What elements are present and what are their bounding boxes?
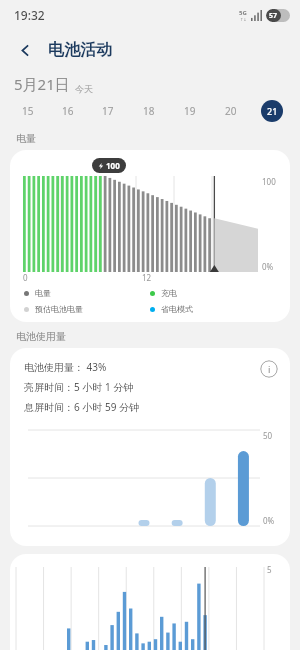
staticText: 充电 <box>161 288 177 298</box>
staticText: 18 <box>143 104 155 118</box>
staticText: 电池活动 <box>48 40 112 60</box>
button[interactable]: 20 <box>210 94 251 128</box>
staticText: 0% <box>263 515 275 526</box>
staticText: 5月21日 <box>14 74 70 94</box>
staticText: 19:32 <box>14 7 45 23</box>
button[interactable]: 21 <box>251 94 292 128</box>
staticText: 100 <box>106 160 120 171</box>
staticText: 0 <box>23 272 28 283</box>
button[interactable]: 100 <box>10 150 290 322</box>
staticText: 5G <box>239 9 247 17</box>
staticText: 5 <box>267 564 272 575</box>
staticText: 50 <box>263 430 273 441</box>
button[interactable]: 15 <box>8 94 48 128</box>
staticText: 今天 <box>75 83 93 94</box>
staticText: i <box>268 363 271 375</box>
staticText: 21 <box>267 105 278 117</box>
staticText: 0% <box>262 261 274 272</box>
staticText: 电池使用量 <box>16 330 66 343</box>
button[interactable]: Info <box>260 360 278 378</box>
staticText: 19 <box>184 104 196 118</box>
button[interactable]: 18 <box>128 94 169 128</box>
staticText: 16 <box>62 104 74 118</box>
staticText: 12 <box>142 272 152 283</box>
staticText: 省电模式 <box>161 304 193 314</box>
staticText: 预估电池电量 <box>35 304 83 314</box>
staticText: 100 <box>262 176 276 187</box>
staticText: 亮屏时间：5 小时 1 分钟 <box>24 380 134 394</box>
button[interactable]: 17 <box>88 94 128 128</box>
button[interactable]: Back <box>10 35 40 65</box>
staticText: 电量 <box>16 132 36 145</box>
staticText: 电池使用量： 43% <box>24 360 107 374</box>
staticText: 15 <box>22 104 34 118</box>
button[interactable]: 19 <box>169 94 210 128</box>
button[interactable]: 电池使用量： 43% <box>10 348 290 546</box>
staticText: 20 <box>225 104 237 118</box>
staticText: 电量 <box>35 288 51 298</box>
staticText: 17 <box>102 104 114 118</box>
staticText: ↑↓ <box>240 17 247 22</box>
staticText: 57 <box>269 11 278 21</box>
button[interactable]: 16 <box>48 94 88 128</box>
staticText: 息屏时间：6 小时 59 分钟 <box>24 400 139 414</box>
button[interactable]: 5 <box>10 554 290 650</box>
